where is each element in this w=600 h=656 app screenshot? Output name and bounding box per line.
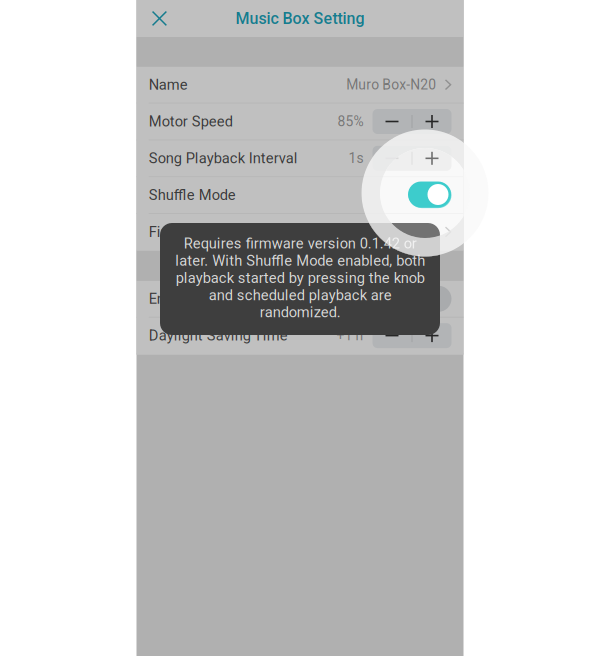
staticText: +1 h — [336, 327, 363, 344]
staticText: Name — [149, 76, 188, 93]
button[interactable]: Daylight Saving Time — [136, 318, 463, 354]
staticText: Requires firmware version 0.1.42 or late… — [175, 235, 425, 321]
button[interactable]: Shuffle Mode — [136, 177, 463, 214]
staticText: Shuffle Mode — [149, 186, 236, 204]
button[interactable]: Daylight Saving Time — [136, 318, 463, 354]
staticText: Requires firmware version 0.1.42 or late… — [175, 235, 425, 321]
staticText: Name — [149, 76, 188, 93]
staticText: Muro Box-N20 — [346, 77, 436, 93]
staticText: Requires firmware version 0.1.42 or late… — [175, 235, 425, 321]
staticText: 1s — [348, 150, 363, 166]
staticText: Music Box Setting — [235, 9, 364, 28]
staticText: Firmware Version — [149, 223, 265, 240]
button[interactable]: Name — [136, 67, 463, 104]
staticText: Daylight Saving Time — [149, 327, 288, 344]
button[interactable]: Song Playback Interval — [136, 140, 463, 177]
staticText: 85% — [337, 113, 363, 130]
button[interactable]: Close — [136, 0, 182, 37]
staticText: Song Playback Interval — [149, 150, 298, 167]
button[interactable]: Firmware Version — [136, 214, 463, 251]
staticText: Name — [149, 76, 188, 93]
button[interactable]: Motor Speed — [136, 104, 463, 140]
staticText: Motor Speed — [149, 113, 233, 130]
staticText: Enable Scheduled Playback — [149, 290, 329, 307]
staticText: Song Playback Interval — [149, 150, 298, 167]
staticText: Muro Box-N20 — [346, 77, 436, 93]
button[interactable]: Name — [136, 67, 463, 104]
button[interactable]: Adjust value — [372, 109, 451, 134]
staticText: 85% — [337, 113, 363, 130]
button[interactable]: Shuffle Mode — [136, 177, 463, 214]
staticText: Shuffle Mode — [149, 186, 236, 204]
button[interactable]: Shuffle Mode — [136, 177, 463, 214]
button[interactable]: Enable Scheduled Playback — [136, 281, 463, 318]
staticText: Daylight Saving Time — [149, 327, 288, 344]
staticText: Motor Speed — [149, 113, 233, 130]
button[interactable]: Adjust value — [372, 146, 451, 171]
button[interactable]: Adjust value — [372, 109, 451, 134]
staticText: Enable Scheduled Playback — [149, 290, 329, 307]
staticText: Muro Box-N20 — [346, 77, 436, 93]
button[interactable]: Close — [136, 0, 182, 37]
staticText: 85% — [337, 113, 363, 130]
staticText: Song Playback Interval — [149, 150, 298, 167]
staticText: Shuffle Mode — [149, 186, 236, 204]
button[interactable]: Enable Scheduled Playback — [136, 281, 463, 318]
button[interactable]: Close — [136, 0, 182, 37]
button[interactable]: Song Playback Interval — [136, 140, 463, 177]
staticText: +1 h — [336, 327, 363, 344]
button[interactable]: Adjust value — [372, 323, 451, 348]
staticText: 1s — [348, 150, 363, 166]
staticText: Daylight Saving Time — [149, 327, 288, 344]
button[interactable]: Motor Speed — [136, 104, 463, 140]
staticText: Enable Scheduled Playback — [149, 290, 329, 307]
button[interactable]: Adjust value — [372, 109, 451, 134]
staticText: Music Box Setting — [235, 9, 364, 28]
button[interactable]: Enable Scheduled Playback — [136, 281, 463, 318]
button[interactable]: Adjust value — [372, 323, 451, 348]
staticText: 1s — [348, 150, 363, 166]
button[interactable]: Motor Speed — [136, 104, 463, 140]
button[interactable]: Daylight Saving Time — [136, 318, 463, 354]
button[interactable]: Song Playback Interval — [136, 140, 463, 177]
button[interactable]: Adjust value — [372, 146, 451, 171]
button[interactable]: Name — [136, 67, 463, 104]
staticText: Firmware Version — [149, 223, 265, 240]
staticText: Music Box Setting — [235, 9, 364, 28]
staticText: +1 h — [336, 327, 363, 344]
button[interactable]: Adjust value — [372, 323, 451, 348]
button[interactable]: Firmware Version — [136, 214, 463, 251]
button[interactable]: Firmware Version — [136, 214, 463, 251]
button[interactable]: Adjust value — [372, 146, 451, 171]
staticText: Motor Speed — [149, 113, 233, 130]
staticText: Firmware Version — [149, 223, 265, 240]
